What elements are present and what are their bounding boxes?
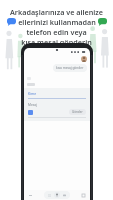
button[interactable]: Gönder <box>69 109 86 115</box>
button[interactable]: Recents <box>81 193 86 198</box>
staticText: ellerinizi kullanmadan <box>18 17 96 27</box>
staticText: telefon edin veya <box>26 27 87 37</box>
staticText: kısa mesaj gönderin <box>21 37 92 47</box>
button[interactable]: Dialpad <box>47 193 52 198</box>
button[interactable]: kısa mesaj gönder <box>53 64 87 72</box>
button[interactable]: Profile <box>81 56 87 62</box>
staticText: kısa mesaj gönder <box>56 66 84 70</box>
button[interactable]: Keyboard <box>28 110 33 115</box>
button[interactable]: Messages <box>62 193 67 198</box>
staticText: Kime <box>28 91 37 96</box>
staticText: Gönder <box>72 110 83 114</box>
staticText: Mesaj <box>28 103 37 107</box>
button[interactable]: Back <box>28 193 33 198</box>
staticText: Arkadaşlarınıza ve ailenize <box>10 7 103 17</box>
button[interactable]: Microphone <box>54 192 60 198</box>
